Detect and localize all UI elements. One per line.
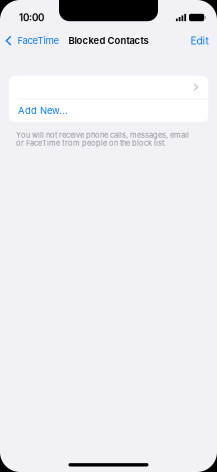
staticText: 10:00 [19,12,44,24]
staticText: Add New... [18,105,68,116]
button[interactable]: Blocked contact [9,76,208,99]
button[interactable]: Edit [184,30,217,51]
button[interactable]: FaceTime [0,31,64,50]
staticText: FaceTime [18,35,60,46]
button[interactable]: Add New... [9,99,208,122]
staticText: Edit [190,34,208,47]
staticText: Blocked Contacts [68,35,148,46]
staticText: You will not receive phone calls, messag… [16,130,189,140]
staticText: or FaceTime from people on the block lis… [16,138,166,147]
